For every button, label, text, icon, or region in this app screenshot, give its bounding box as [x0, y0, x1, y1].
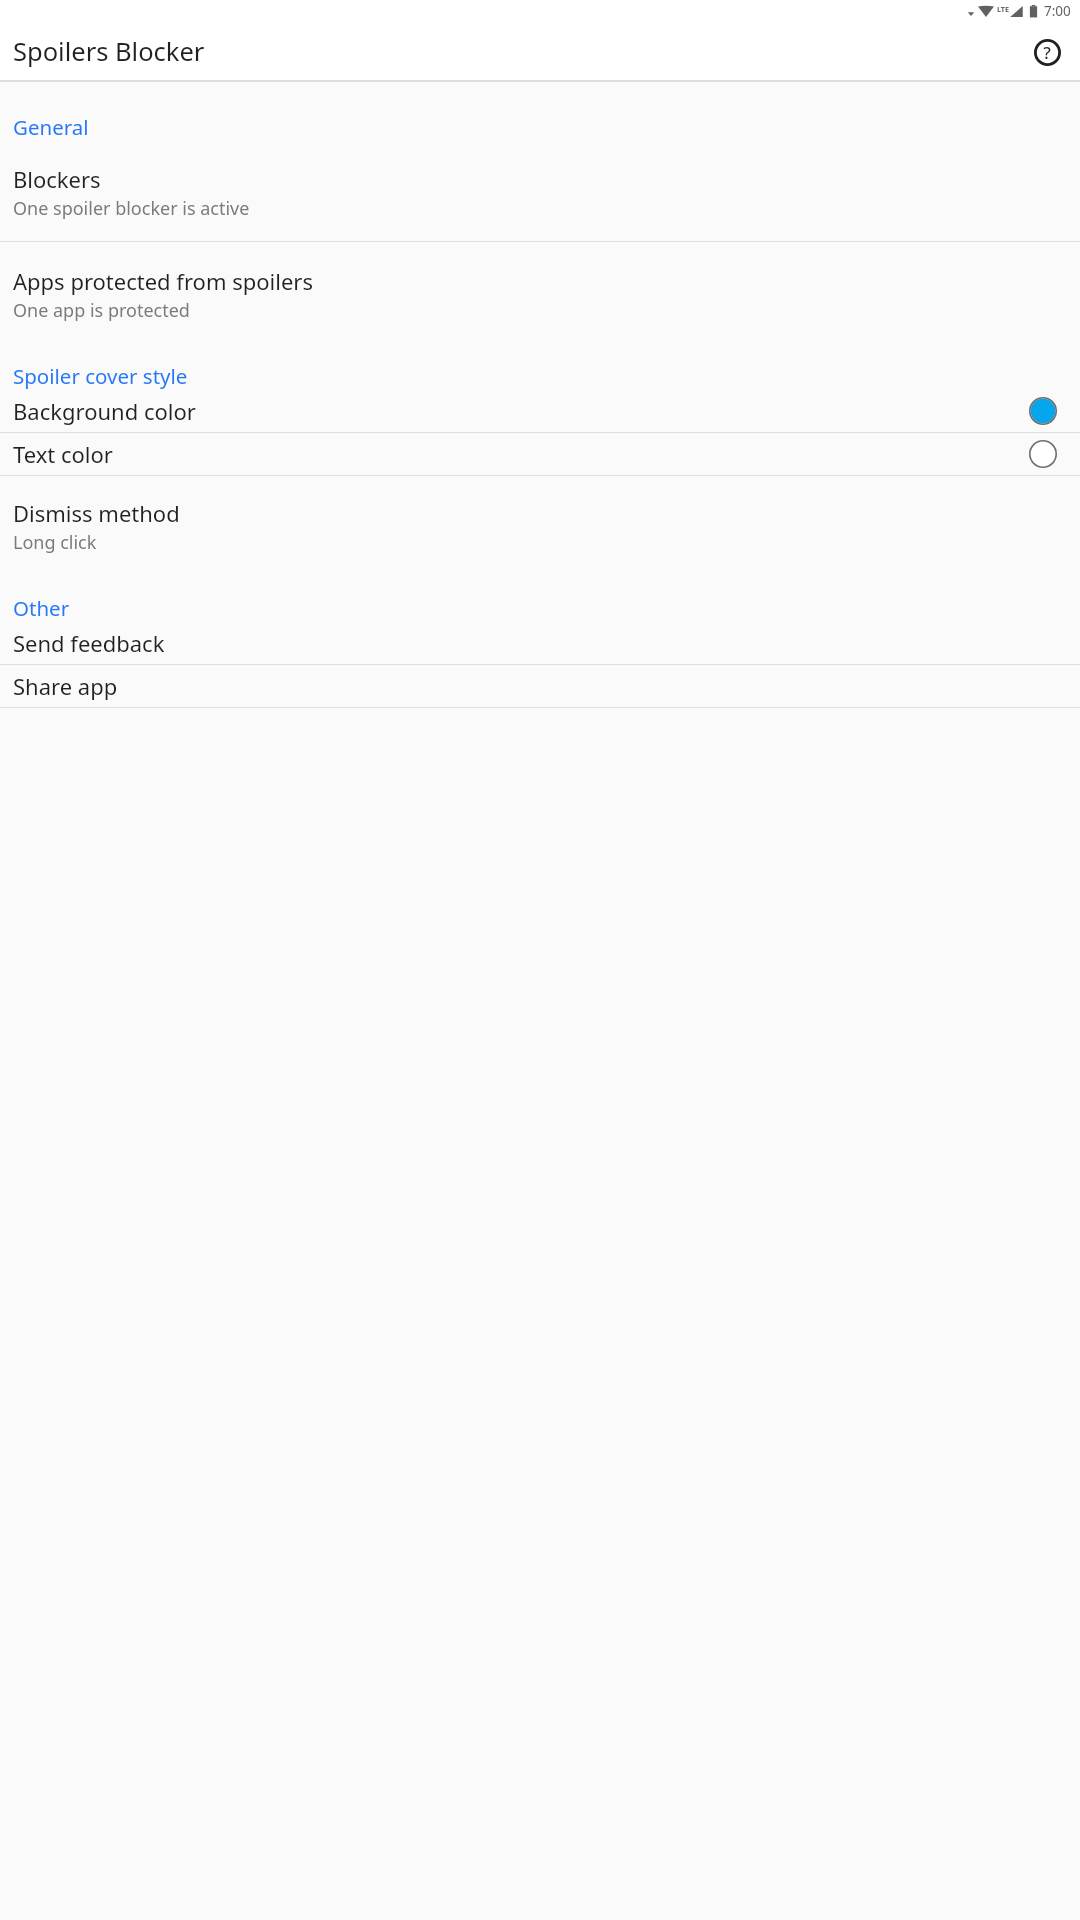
staticText: LTE	[997, 4, 1010, 14]
button[interactable]: Send feedback	[0, 622, 1080, 664]
button[interactable]: Apps protected from spoilers	[0, 242, 1080, 345]
staticText: Other	[13, 594, 70, 622]
staticText: Dismiss method	[13, 498, 180, 528]
staticText: Spoilers Blocker	[13, 34, 205, 69]
button[interactable]: Text color	[0, 433, 1080, 475]
button[interactable]: Dismiss method	[0, 476, 1080, 577]
staticText: 7:00	[1044, 2, 1071, 20]
staticText: Spoiler cover style	[13, 362, 188, 390]
staticText: One app is protected	[13, 298, 190, 323]
staticText: Blockers	[13, 164, 101, 194]
staticText: Apps protected from spoilers	[13, 266, 313, 296]
button[interactable]: Help	[1025, 30, 1069, 74]
staticText: Long click	[13, 530, 97, 555]
button[interactable]: Blockers	[0, 141, 1080, 241]
button[interactable]: Share app	[0, 665, 1080, 707]
staticText: Share app	[13, 671, 118, 701]
staticText: Background color	[13, 396, 1029, 426]
staticText: ?	[1043, 41, 1051, 64]
staticText: Send feedback	[13, 628, 165, 658]
staticText: One spoiler blocker is active	[13, 196, 250, 221]
staticText: General	[13, 113, 89, 141]
button[interactable]: Background color	[0, 390, 1080, 432]
staticText: Text color	[13, 439, 1029, 469]
